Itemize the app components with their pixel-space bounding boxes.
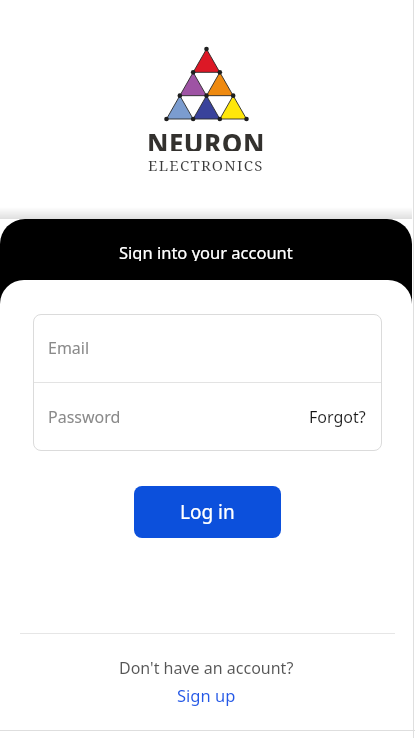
button[interactable]: Forgot? — [309, 406, 366, 428]
button[interactable]: Password — [33, 383, 382, 451]
staticText: Don't have an account? — [119, 657, 294, 677]
button[interactable]: Log in — [134, 486, 281, 538]
button[interactable]: Sign up — [177, 684, 236, 706]
staticText: ELECTRONICS — [148, 155, 264, 175]
staticText: Password — [48, 406, 121, 428]
staticText: Email — [48, 337, 90, 359]
staticText: Sign into your account — [119, 241, 293, 261]
staticText: Log in — [180, 499, 235, 525]
button[interactable]: Email — [33, 314, 382, 382]
staticText: NEURON — [147, 125, 265, 151]
